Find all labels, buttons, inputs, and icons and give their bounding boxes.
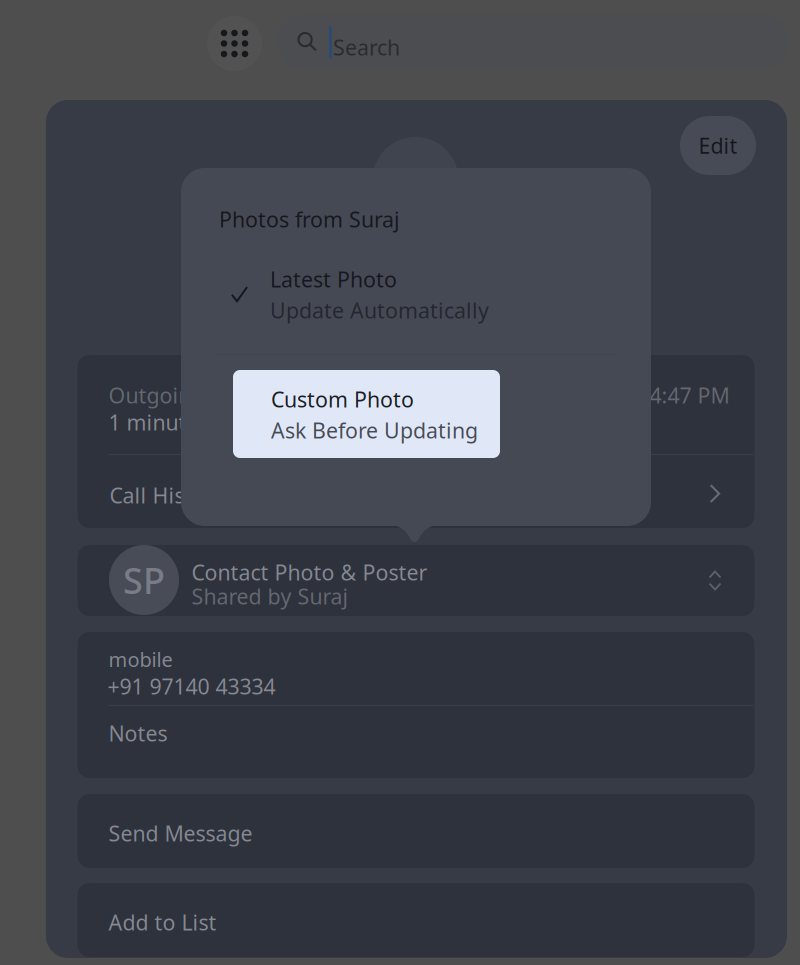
- staticText: Contact Photo & Poster: [191, 558, 427, 586]
- button[interactable]: Edit: [680, 116, 756, 175]
- button[interactable]: Keypad: [207, 16, 262, 71]
- button[interactable]: Latest Photo: [181, 168, 651, 338]
- staticText: Notes: [108, 719, 167, 747]
- staticText: Photos from Suraj: [219, 205, 400, 233]
- button[interactable]: Custom Photo: [233, 370, 500, 458]
- staticText: SP: [123, 556, 165, 604]
- staticText: Edit: [698, 131, 737, 160]
- staticText: 1 minute: [108, 408, 198, 436]
- staticText: Update Automatically: [270, 296, 489, 324]
- button[interactable]: SP: [77, 545, 754, 616]
- staticText: Add to List: [108, 908, 216, 936]
- staticText: mobile: [108, 646, 172, 673]
- staticText: Ask Before Updating: [271, 416, 478, 444]
- staticText: +91 97140 43334: [107, 672, 275, 700]
- staticText: Search: [333, 33, 400, 61]
- staticText: Shared by Suraj: [191, 582, 348, 610]
- button[interactable]: Send Message: [77, 794, 754, 868]
- staticText: Send Message: [108, 819, 252, 847]
- button[interactable]: Search: [277, 14, 789, 70]
- staticText: Call History: [109, 481, 225, 509]
- staticText: Latest Photo: [270, 265, 397, 293]
- button[interactable]: Add to List: [77, 883, 754, 957]
- staticText: Custom Photo: [271, 385, 414, 413]
- staticText: 4:47 PM: [649, 381, 729, 409]
- staticText: Outgoing Call: [108, 381, 247, 409]
